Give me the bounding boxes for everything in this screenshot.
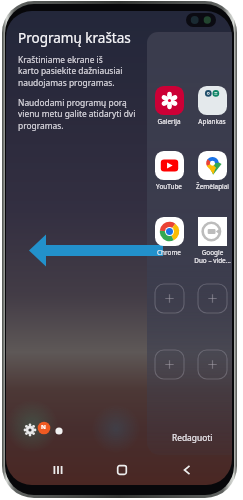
button[interactable]: Google Duo – vide… <box>191 217 232 265</box>
button[interactable]: YouTube <box>148 151 190 191</box>
staticText: Kraštiniame ekrane iš karto pasiekite da… <box>18 54 123 89</box>
button[interactable]: Aplankas <box>191 86 232 126</box>
staticText: Chrome <box>157 248 181 257</box>
button[interactable]: Add app <box>198 284 227 313</box>
button[interactable]: Recent apps <box>46 458 70 482</box>
button[interactable]: Add app <box>198 350 227 379</box>
button[interactable]: Add app <box>155 284 184 313</box>
button[interactable]: Galerija <box>148 86 190 126</box>
staticText: Žemėlapiai <box>196 182 229 191</box>
staticText: Redaguoti <box>172 432 213 443</box>
button[interactable]: Redaguoti <box>164 428 220 446</box>
staticText: Google Duo – vide… <box>194 248 231 265</box>
staticText: Galerija <box>157 117 181 126</box>
staticText: YouTube <box>156 182 182 191</box>
staticText: N <box>41 423 46 431</box>
button[interactable]: Chrome <box>148 217 190 257</box>
button[interactable]: Žemėlapiai <box>191 151 232 191</box>
staticText: Naudodami programų porą vienu metu galit… <box>18 97 136 132</box>
staticText: Aplankas <box>198 117 226 126</box>
button[interactable]: Home <box>110 458 134 482</box>
staticText: Programų kraštas <box>18 29 131 47</box>
button[interactable]: Add app <box>155 350 184 379</box>
button[interactable]: Back <box>175 458 199 482</box>
